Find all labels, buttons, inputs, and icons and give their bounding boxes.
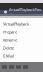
button[interactable]: Delete <box>0 44 43 52</box>
staticText: VirtualPlaybackPanel <box>8 7 41 17</box>
staticText: VirtualPlayback <box>3 21 29 27</box>
staticText: Rename <box>3 37 17 43</box>
button[interactable]: E-Mail <box>0 52 43 60</box>
staticText: Delete <box>3 45 14 51</box>
button[interactable]: Prepare <box>0 28 43 36</box>
button[interactable]: VirtualPlayback <box>0 20 43 28</box>
staticText: Prepare <box>3 29 17 35</box>
button[interactable]: Rename <box>0 36 43 44</box>
staticText: E-Mail <box>3 53 14 59</box>
